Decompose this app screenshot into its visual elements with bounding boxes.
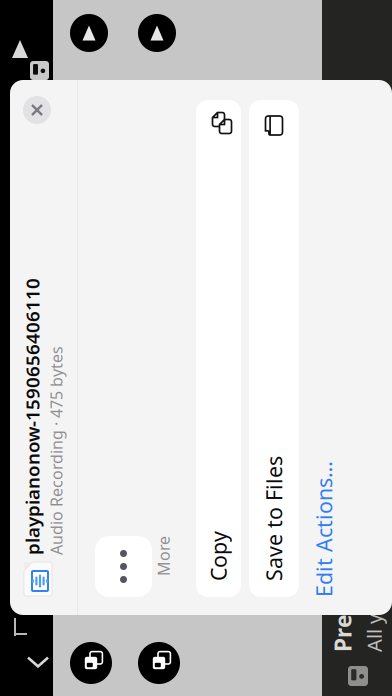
button[interactable]: Save to Files (0, 401, 392, 451)
staticText: Audio Recording · 475 bytes (0, 198, 198, 219)
staticText: playpianonow-1590656406110 (0, 172, 266, 197)
staticText: Copy (0, 356, 13, 385)
staticText: Save to Files (0, 412, 88, 440)
button[interactable]: Edit Actions… (0, 462, 167, 490)
staticText: Edit Actions… (0, 462, 83, 490)
button[interactable]: Copy (0, 348, 392, 393)
